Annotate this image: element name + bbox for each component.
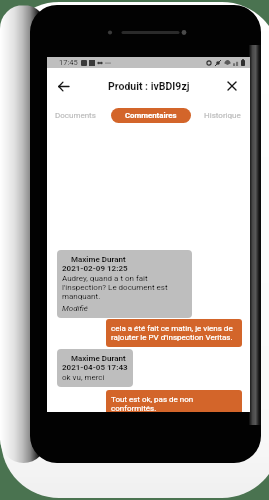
- staticText: Tout est ok, pas de non conformités.: [111, 395, 237, 412]
- staticText: 2021-02-09 12:25: [62, 264, 128, 273]
- staticText: ok vu, merci: [62, 373, 105, 382]
- staticText: 17:45: [59, 58, 78, 67]
- button[interactable]: Fermer: [222, 76, 242, 96]
- staticText: cela a été fait ce matin, je viens de ra…: [111, 324, 237, 342]
- staticText: Commentaires: [125, 111, 177, 120]
- button[interactable]: Maxime Durant: [57, 349, 133, 387]
- button[interactable]: Documents: [47, 111, 96, 120]
- button[interactable]: Retour: [53, 76, 73, 96]
- staticText: Modifié: [62, 304, 88, 313]
- button[interactable]: Maxime Durant: [57, 250, 192, 318]
- staticText: Maxime Durant: [71, 354, 126, 363]
- staticText: Maxime Durant: [71, 255, 126, 264]
- button[interactable]: Tout est ok, pas de non conformités.: [106, 390, 242, 412]
- button[interactable]: Historique: [204, 111, 250, 120]
- button[interactable]: cela a été fait ce matin, je viens de ra…: [106, 319, 242, 347]
- staticText: Audrey, quand a t on fait l'inspection? …: [62, 274, 187, 301]
- button[interactable]: Commentaires: [111, 108, 191, 123]
- staticText: 2021-04-05 17:43: [62, 363, 128, 372]
- staticText: Produit : ivBDI9zj: [108, 80, 190, 92]
